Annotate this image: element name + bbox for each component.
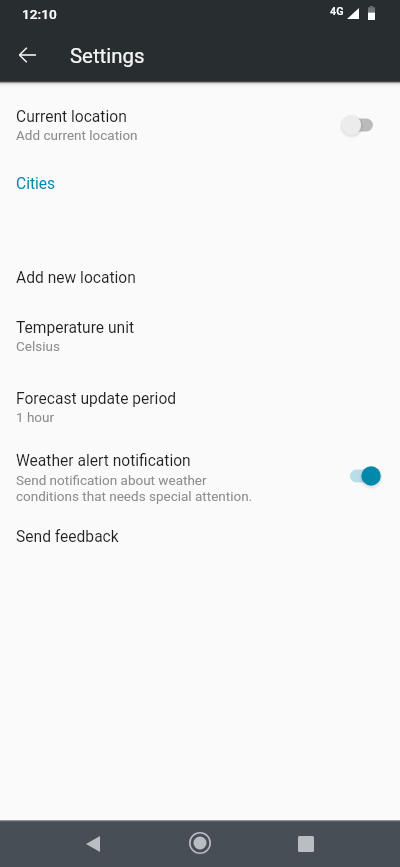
button[interactable]: Add new location [0,262,400,294]
button[interactable]: On [342,454,398,498]
staticText: Current location [16,108,127,126]
staticText: Forecast update period [16,390,177,408]
button[interactable]: Recent apps [283,821,329,866]
button[interactable]: Current location [0,95,400,145]
button[interactable]: Weather alert notification [0,443,400,508]
button[interactable]: Forecast update period [0,381,400,427]
button[interactable]: Home [177,820,223,865]
staticText: 4G [330,5,344,18]
staticText: Send notification about weather conditio… [16,472,253,504]
staticText: Add new location [16,269,136,287]
staticText: Cities [16,175,56,193]
staticText: Weather alert notification [16,452,191,470]
button[interactable]: Send feedback [0,521,400,553]
staticText: Add current location [16,127,138,143]
staticText: 12:10 [22,6,57,22]
button[interactable]: Temperature unit [0,310,400,356]
staticText: Send feedback [16,528,119,546]
button[interactable]: Navigate up [7,35,47,75]
staticText: 1 hour [16,409,55,425]
button[interactable]: Back [70,821,116,866]
staticText: Settings [70,44,145,68]
staticText: Celsius [16,338,60,354]
button[interactable]: Off [342,103,398,147]
staticText: Temperature unit [16,319,135,337]
